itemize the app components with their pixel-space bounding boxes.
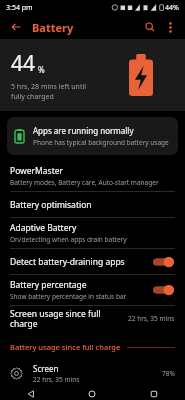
- button[interactable]: Screen: [0, 359, 185, 387]
- staticText: Screen: [33, 363, 59, 374]
- staticText: 22 hrs, 35 mins: [128, 314, 175, 323]
- staticText: Show battery percentage in status bar: [10, 292, 127, 301]
- staticText: Battery: [32, 20, 74, 35]
- button[interactable]: Home: [61, 387, 123, 400]
- staticText: 3:54 pm: [6, 3, 33, 13]
- staticText: Battery optimisation: [10, 199, 92, 211]
- staticText: Apps are running normally: [33, 125, 134, 136]
- staticText: Battery percentage: [10, 279, 87, 291]
- button[interactable]: Screen usage since full charge: [0, 306, 185, 331]
- staticText: Detect battery-draining apps: [10, 256, 125, 268]
- staticText: Battery usage since full charge: [10, 342, 121, 352]
- staticText: 22 hrs, 35 mins: [33, 375, 80, 384]
- button[interactable]: Recent apps: [123, 387, 185, 400]
- button[interactable]: Apps are running normally: [7, 117, 178, 155]
- button[interactable]: Back: [0, 387, 61, 400]
- button[interactable]: Detect battery-draining apps: [0, 249, 185, 274]
- staticText: 78%: [162, 369, 175, 378]
- button[interactable]: Back: [7, 18, 25, 36]
- staticText: 44: [11, 49, 36, 78]
- button[interactable]: More options: [162, 19, 178, 35]
- staticText: PowerMaster: [10, 165, 64, 177]
- staticText: Screen usage since full charge: [10, 308, 128, 329]
- staticText: On/detecting when apps drain battery: [10, 235, 127, 244]
- button[interactable]: PowerMaster: [0, 161, 185, 191]
- button[interactable]: Adaptive Battery: [0, 218, 185, 248]
- staticText: Phone has typical background battery usa…: [33, 138, 169, 147]
- staticText: 44%: [165, 3, 179, 13]
- staticText: fully charged: [11, 92, 54, 102]
- button[interactable]: Battery percentage: [0, 275, 185, 305]
- staticText: Adaptive Battery: [10, 222, 77, 234]
- button[interactable]: Toggle Battery percentage: [151, 282, 175, 298]
- staticText: Battery modes, Battery care, Auto-start …: [10, 178, 159, 187]
- button[interactable]: Toggle Detect battery-draining apps: [151, 254, 175, 270]
- button[interactable]: Battery optimisation: [0, 192, 185, 217]
- staticText: 5 hrs, 28 mins left until: [11, 82, 87, 92]
- staticText: %: [38, 64, 45, 75]
- button[interactable]: Search: [141, 18, 159, 36]
